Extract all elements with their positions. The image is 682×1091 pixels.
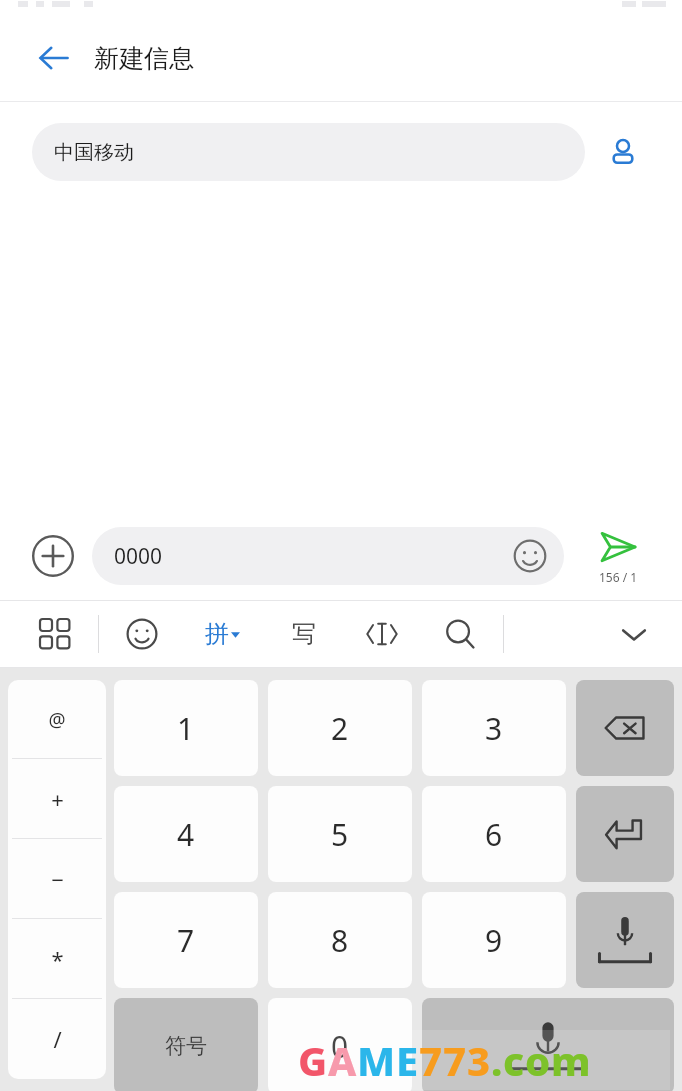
staticText: o — [525, 1033, 551, 1087]
staticText: 7 — [443, 1033, 467, 1087]
staticText: c — [503, 1033, 525, 1087]
button[interactable]: 9 — [422, 892, 566, 988]
button[interactable]: Enter — [576, 786, 674, 882]
staticText: M — [357, 1033, 396, 1087]
staticText: 4 — [177, 814, 195, 855]
staticText: G — [298, 1033, 328, 1087]
staticText: 7 — [419, 1033, 443, 1087]
staticText: 中国移动 — [54, 140, 134, 165]
button[interactable]: Emoticons — [111, 603, 173, 665]
staticText: 5 — [331, 814, 349, 855]
staticText: 2 — [331, 708, 349, 749]
button[interactable]: 5 — [268, 786, 412, 882]
button[interactable]: 符号 — [114, 998, 258, 1091]
staticText: 新建信息 — [94, 43, 194, 74]
button[interactable]: 1 — [114, 680, 258, 776]
button[interactable]: / — [8, 999, 106, 1079]
button[interactable]: @ — [8, 680, 106, 759]
button[interactable]: 写 — [273, 603, 335, 665]
button[interactable]: 中国移动 — [32, 123, 585, 181]
staticText: * — [51, 944, 64, 974]
staticText: . — [491, 1033, 503, 1087]
button[interactable]: * — [8, 919, 106, 999]
staticText: − — [51, 864, 64, 894]
button[interactable]: Backspace — [576, 680, 674, 776]
button[interactable]: Emoji — [508, 534, 552, 578]
button[interactable]: 拼 — [189, 601, 255, 667]
staticText: @ — [48, 707, 66, 733]
staticText: 7 — [177, 920, 195, 961]
staticText: 0 — [331, 1026, 349, 1067]
staticText: / — [53, 1024, 62, 1054]
button[interactable]: 2 — [268, 680, 412, 776]
button[interactable]: Move cursor — [351, 603, 413, 665]
button[interactable]: Choose contact — [597, 126, 649, 178]
button[interactable]: Back — [26, 30, 82, 86]
staticText: 1 — [177, 708, 195, 749]
button[interactable]: Hide keyboard — [602, 602, 666, 666]
button[interactable]: 0 — [268, 998, 412, 1091]
button[interactable]: 4 — [114, 786, 258, 882]
staticText: 3 — [467, 1033, 491, 1087]
staticText: 符号 — [165, 1033, 207, 1059]
button[interactable]: 6 — [422, 786, 566, 882]
staticText: 6 — [485, 814, 503, 855]
staticText: 9 — [485, 920, 503, 961]
button[interactable]: 7 — [114, 892, 258, 988]
staticText: A — [328, 1033, 357, 1087]
staticText: 3 — [485, 708, 503, 749]
button[interactable]: − — [8, 839, 106, 919]
button[interactable]: 0000 — [92, 527, 564, 585]
button[interactable]: Space — [576, 892, 674, 988]
button[interactable]: 3 — [422, 680, 566, 776]
staticText: m — [551, 1033, 591, 1087]
staticText: + — [51, 784, 64, 814]
staticText: 0000 — [114, 542, 163, 571]
button[interactable]: Search — [429, 603, 491, 665]
staticText: 写 — [292, 619, 316, 649]
button[interactable]: Add attachment — [20, 523, 86, 589]
staticText: 8 — [331, 920, 349, 961]
button[interactable]: 8 — [268, 892, 412, 988]
button[interactable]: Send — [574, 512, 662, 600]
staticText: 156 / 1 — [599, 569, 638, 585]
staticText: 拼 — [205, 619, 229, 649]
button[interactable]: Keyboard layouts — [24, 603, 86, 665]
button[interactable]: Voice input — [422, 998, 674, 1091]
staticText: E — [396, 1033, 419, 1087]
button[interactable]: + — [8, 759, 106, 839]
